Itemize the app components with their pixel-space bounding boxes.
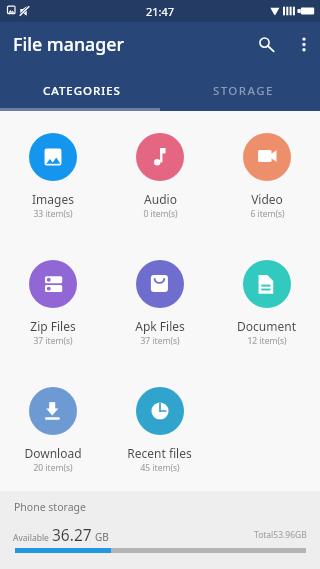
- staticText: 37 item(s): [140, 335, 180, 347]
- button[interactable]: CATEGORIES: [0, 70, 160, 111]
- staticText: 33 item(s): [33, 208, 73, 220]
- button[interactable]: Audio: [133, 133, 187, 220]
- staticText: Total53.96GB: [254, 529, 307, 541]
- button[interactable]: Apk Files: [132, 260, 188, 347]
- staticText: 12 item(s): [247, 335, 287, 347]
- button[interactable]: More options: [286, 24, 320, 60]
- button[interactable]: Recent files: [124, 387, 195, 474]
- staticText: 37 item(s): [33, 335, 73, 347]
- staticText: File manager: [13, 32, 124, 56]
- button[interactable]: Zip Files: [26, 260, 80, 347]
- staticText: Video: [251, 191, 283, 207]
- staticText: Phone storage: [14, 500, 86, 514]
- button[interactable]: Video: [240, 133, 294, 220]
- staticText: Recent files: [127, 445, 192, 461]
- button[interactable]: STORAGE: [160, 70, 320, 111]
- staticText: Zip Files: [30, 318, 76, 334]
- staticText: GB: [95, 530, 109, 544]
- staticText: 0 item(s): [143, 208, 178, 220]
- staticText: Available: [13, 532, 49, 544]
- staticText: 21:47: [146, 4, 175, 19]
- staticText: STORAGE: [213, 83, 274, 99]
- button[interactable]: Document: [234, 260, 299, 347]
- button[interactable]: Search: [246, 24, 284, 62]
- staticText: CATEGORIES: [43, 83, 121, 99]
- button[interactable]: Download: [21, 387, 85, 474]
- staticText: 36.27: [52, 524, 92, 545]
- staticText: 45 item(s): [140, 462, 180, 474]
- staticText: Images: [32, 191, 74, 207]
- button[interactable]: Images: [26, 133, 80, 220]
- staticText: Download: [24, 445, 82, 461]
- staticText: 20 item(s): [33, 462, 73, 474]
- staticText: Audio: [144, 191, 177, 207]
- staticText: 6 item(s): [250, 208, 285, 220]
- staticText: Apk Files: [135, 318, 185, 334]
- staticText: Document: [237, 318, 296, 334]
